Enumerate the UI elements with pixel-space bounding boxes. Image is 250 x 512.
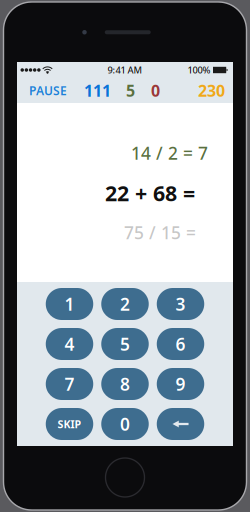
staticText: 0 [120,412,130,435]
button[interactable]: 3 [157,288,204,320]
staticText: 7 [64,372,74,395]
staticText: 100% [187,64,210,76]
button[interactable]: 9 [157,368,204,400]
button[interactable]: 5 [101,328,149,360]
staticText: 0 [151,80,160,101]
staticText: 14 / 2 = 7 [131,141,208,164]
button[interactable]: 1 [46,288,93,320]
button[interactable]: Delete [157,408,204,440]
button[interactable]: PAUSE [29,78,73,103]
button[interactable]: 4 [46,328,93,360]
staticText: 111 [84,80,111,101]
staticText: PAUSE [29,82,67,98]
staticText: SKIP [57,417,81,431]
staticText: 1 [64,292,74,315]
button[interactable]: 8 [101,368,149,400]
staticText: 6 [175,332,185,355]
button[interactable]: 2 [101,288,149,320]
button[interactable]: 0 [101,408,149,440]
staticText: 4 [64,332,74,355]
staticText: 75 / 15 = [124,221,196,244]
button[interactable]: 6 [157,328,204,360]
staticText: 5 [120,332,130,355]
staticText: 5 [126,80,135,101]
staticText: 8 [120,372,130,395]
staticText: 9 [175,372,185,395]
button[interactable]: 7 [46,368,93,400]
staticText: 2 [120,292,130,315]
staticText: 22 + 68 = [105,179,195,207]
staticText: 9:41 AM [107,64,142,76]
staticText: 230 [198,80,225,101]
staticText: 3 [175,292,185,315]
button[interactable]: SKIP [46,408,93,440]
